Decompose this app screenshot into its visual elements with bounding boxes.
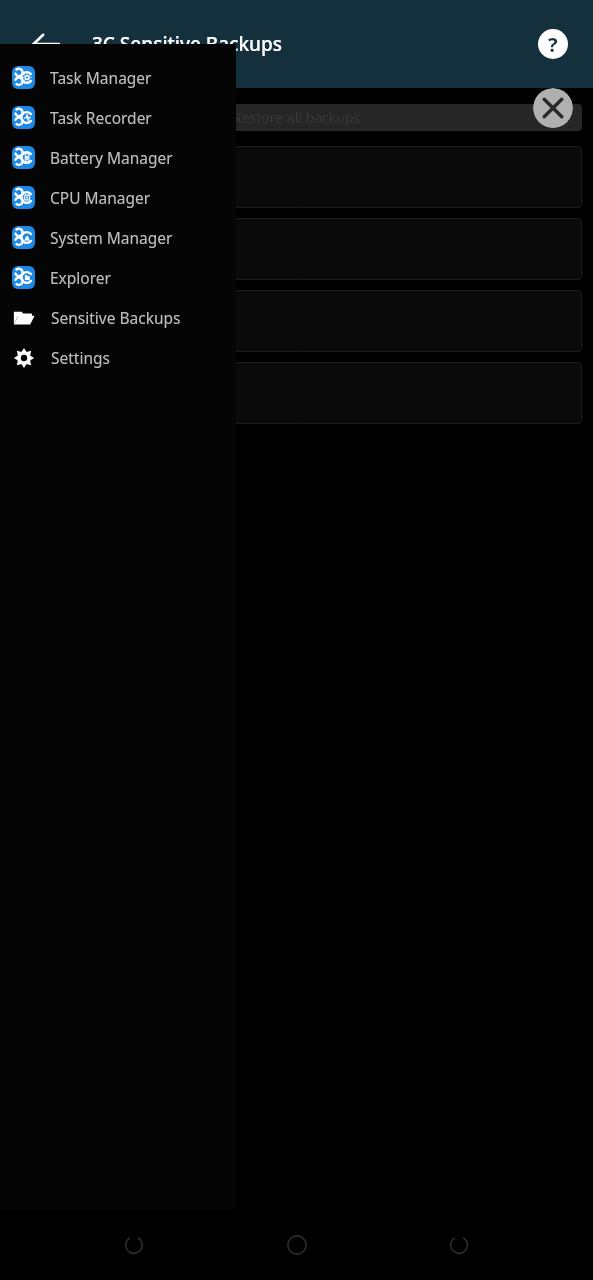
staticText: Sensitive Backups: [51, 307, 181, 328]
button[interactable]: Nothing backed-up: [11, 290, 582, 352]
staticText: ?: [548, 31, 558, 58]
staticText: 3C Sensitive Backups: [92, 31, 282, 57]
staticText: Nothing backed-up: [23, 228, 154, 248]
button[interactable]: Sensitive Backups: [0, 297, 236, 337]
staticText: Battery Manager: [50, 147, 173, 168]
button[interactable]: Back: [22, 20, 70, 68]
button[interactable]: Recents: [431, 1217, 487, 1273]
button[interactable]: Task Manager: [0, 57, 236, 97]
staticText: Task Manager: [50, 67, 152, 88]
staticText: Settings: [51, 347, 110, 368]
staticText: Nothing backed-up: [23, 156, 154, 176]
staticText: Restore all backups: [233, 108, 361, 127]
button[interactable]: Restore all backups: [11, 104, 582, 131]
button[interactable]: Explorer: [0, 257, 236, 297]
button[interactable]: System Manager: [0, 217, 236, 257]
staticText: System Manager: [50, 227, 173, 248]
button[interactable]: Battery Manager: [0, 137, 236, 177]
staticText: No backup yet: [23, 179, 121, 199]
staticText: Explorer: [50, 267, 111, 288]
button[interactable]: Home: [269, 1217, 325, 1273]
button[interactable]: Back: [106, 1217, 162, 1273]
staticText: No backup yet: [23, 251, 121, 271]
button[interactable]: Close: [533, 88, 573, 128]
staticText: Nothing backed-up: [23, 300, 154, 320]
button[interactable]: Help: [531, 22, 575, 66]
staticText: CPU Manager: [50, 187, 151, 208]
button[interactable]: Nothing backed-up: [11, 362, 582, 424]
button[interactable]: Task Recorder: [0, 97, 236, 137]
button[interactable]: Nothing backed-up: [11, 146, 582, 208]
button[interactable]: Settings: [0, 337, 236, 377]
staticText: No known latest backup: [232, 58, 402, 78]
button[interactable]: Nothing backed-up: [11, 218, 582, 280]
staticText: Task Recorder: [50, 107, 152, 128]
staticText: No backup yet: [23, 323, 121, 343]
button[interactable]: CPU Manager: [0, 177, 236, 217]
